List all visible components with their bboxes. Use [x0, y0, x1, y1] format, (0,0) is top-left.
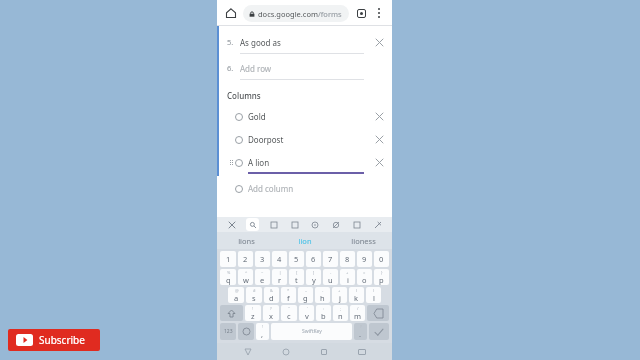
button[interactable]: Recents [316, 344, 331, 359]
button[interactable]: Subscribe [8, 329, 100, 351]
staticText: , [261, 329, 264, 339]
button[interactable]: @ [228, 287, 244, 303]
button[interactable]: Select Doorpost [235, 136, 243, 144]
button[interactable]: Select A lion [235, 159, 243, 167]
button[interactable]: Emoji keyboard [238, 323, 254, 340]
staticText: - [322, 288, 324, 293]
button[interactable]: = [357, 269, 372, 285]
button[interactable]: ~ [255, 269, 270, 285]
button[interactable]: ) [366, 287, 381, 303]
button[interactable]: 3 [255, 251, 270, 267]
button[interactable]: lion [276, 232, 334, 249]
button[interactable]: Themes [329, 218, 342, 231]
staticText: – [305, 288, 307, 293]
staticText: | [279, 270, 282, 275]
button[interactable]: Remove As good as [372, 35, 386, 49]
button[interactable]: 8 [340, 251, 355, 267]
button[interactable]: 5. [227, 35, 386, 49]
button[interactable]: Clipboard manager [350, 218, 363, 231]
button[interactable]: More options [371, 5, 387, 21]
staticText: 6. [227, 63, 234, 73]
button[interactable]: Stickers [267, 218, 280, 231]
button[interactable]: Clipboard [288, 218, 301, 231]
button[interactable]: ^ [238, 269, 253, 285]
button[interactable]: + [340, 269, 355, 285]
button[interactable]: 2 [238, 251, 253, 267]
staticText: Columns [227, 90, 261, 101]
button[interactable]: 7 [323, 251, 338, 267]
button[interactable]: 4 [272, 251, 287, 267]
staticText: v [305, 311, 309, 321]
button[interactable]: 6 [306, 251, 321, 267]
staticText: Add column [248, 183, 294, 194]
button[interactable]: docs.google.com [243, 5, 349, 22]
button[interactable]: Remove A lion [372, 156, 386, 169]
staticText: Subscribe [39, 333, 85, 347]
button[interactable]: lions [217, 232, 276, 249]
button[interactable]: lioness [334, 232, 392, 249]
button[interactable]: Select Add column [235, 185, 243, 193]
button[interactable]: Numbers [220, 323, 236, 340]
button[interactable]: Backspace [367, 305, 389, 321]
button[interactable]: ( [349, 287, 364, 303]
staticText: l [373, 293, 375, 303]
button[interactable]: [ [289, 269, 304, 285]
staticText: r [278, 275, 282, 285]
button[interactable]: : [316, 305, 331, 321]
button[interactable]: Remove Gold [372, 110, 386, 123]
button[interactable]: – [298, 287, 313, 303]
staticText: 123 [224, 328, 233, 335]
button[interactable]: Keyboard [354, 344, 369, 359]
button[interactable]: Close [225, 218, 238, 231]
staticText: e [260, 275, 265, 285]
staticText: Doorpost [248, 134, 284, 145]
button[interactable]: Search [246, 218, 259, 231]
button[interactable]: 0 [374, 251, 389, 267]
staticText: ; [340, 306, 342, 311]
button[interactable]: Pin [371, 218, 384, 231]
button[interactable]: Select A lion [227, 156, 386, 169]
button[interactable]: % [220, 269, 236, 285]
button[interactable]: | [272, 269, 287, 285]
staticText: + [338, 288, 341, 293]
button[interactable]: ! [245, 305, 261, 321]
button[interactable]: Back [240, 344, 255, 359]
button[interactable]: } [374, 269, 389, 285]
button[interactable]: 1 [220, 251, 236, 267]
button[interactable]: Tabs [353, 5, 369, 21]
button[interactable]: / [350, 305, 365, 321]
button[interactable]: Home [222, 4, 240, 22]
button[interactable]: Select Gold [235, 113, 243, 121]
button[interactable]: - [315, 287, 330, 303]
staticText: x [269, 311, 273, 321]
button[interactable]: Home [278, 344, 293, 359]
button[interactable]: ' [299, 305, 314, 321]
button[interactable]: 9 [357, 251, 372, 267]
button[interactable]: ; [333, 305, 348, 321]
button[interactable]: Space [271, 323, 352, 340]
button[interactable]: Select Add column [227, 182, 386, 195]
button[interactable]: Shift [220, 305, 243, 321]
staticText: As good as [240, 37, 281, 48]
button[interactable]: * [281, 287, 296, 303]
button[interactable]: " [281, 305, 297, 321]
staticText: % [227, 270, 231, 275]
button[interactable]: Emoji [308, 218, 321, 231]
staticText: = [363, 270, 366, 275]
button[interactable]: Select Gold [227, 110, 386, 123]
button[interactable]: & [264, 287, 279, 303]
button[interactable]: ! [256, 323, 269, 340]
button[interactable]: 5 [289, 251, 304, 267]
button[interactable]: + [332, 287, 347, 303]
button[interactable]: ? [263, 305, 279, 321]
button[interactable]: # [246, 287, 262, 303]
button[interactable]: 6. [227, 61, 386, 75]
button[interactable]: ? [354, 323, 367, 340]
button[interactable]: - [323, 269, 338, 285]
button[interactable]: Enter [369, 323, 389, 340]
button[interactable]: Select Doorpost [227, 133, 386, 146]
staticText: q [226, 275, 231, 285]
button[interactable]: Remove Doorpost [372, 133, 386, 146]
button[interactable]: ] [306, 269, 321, 285]
